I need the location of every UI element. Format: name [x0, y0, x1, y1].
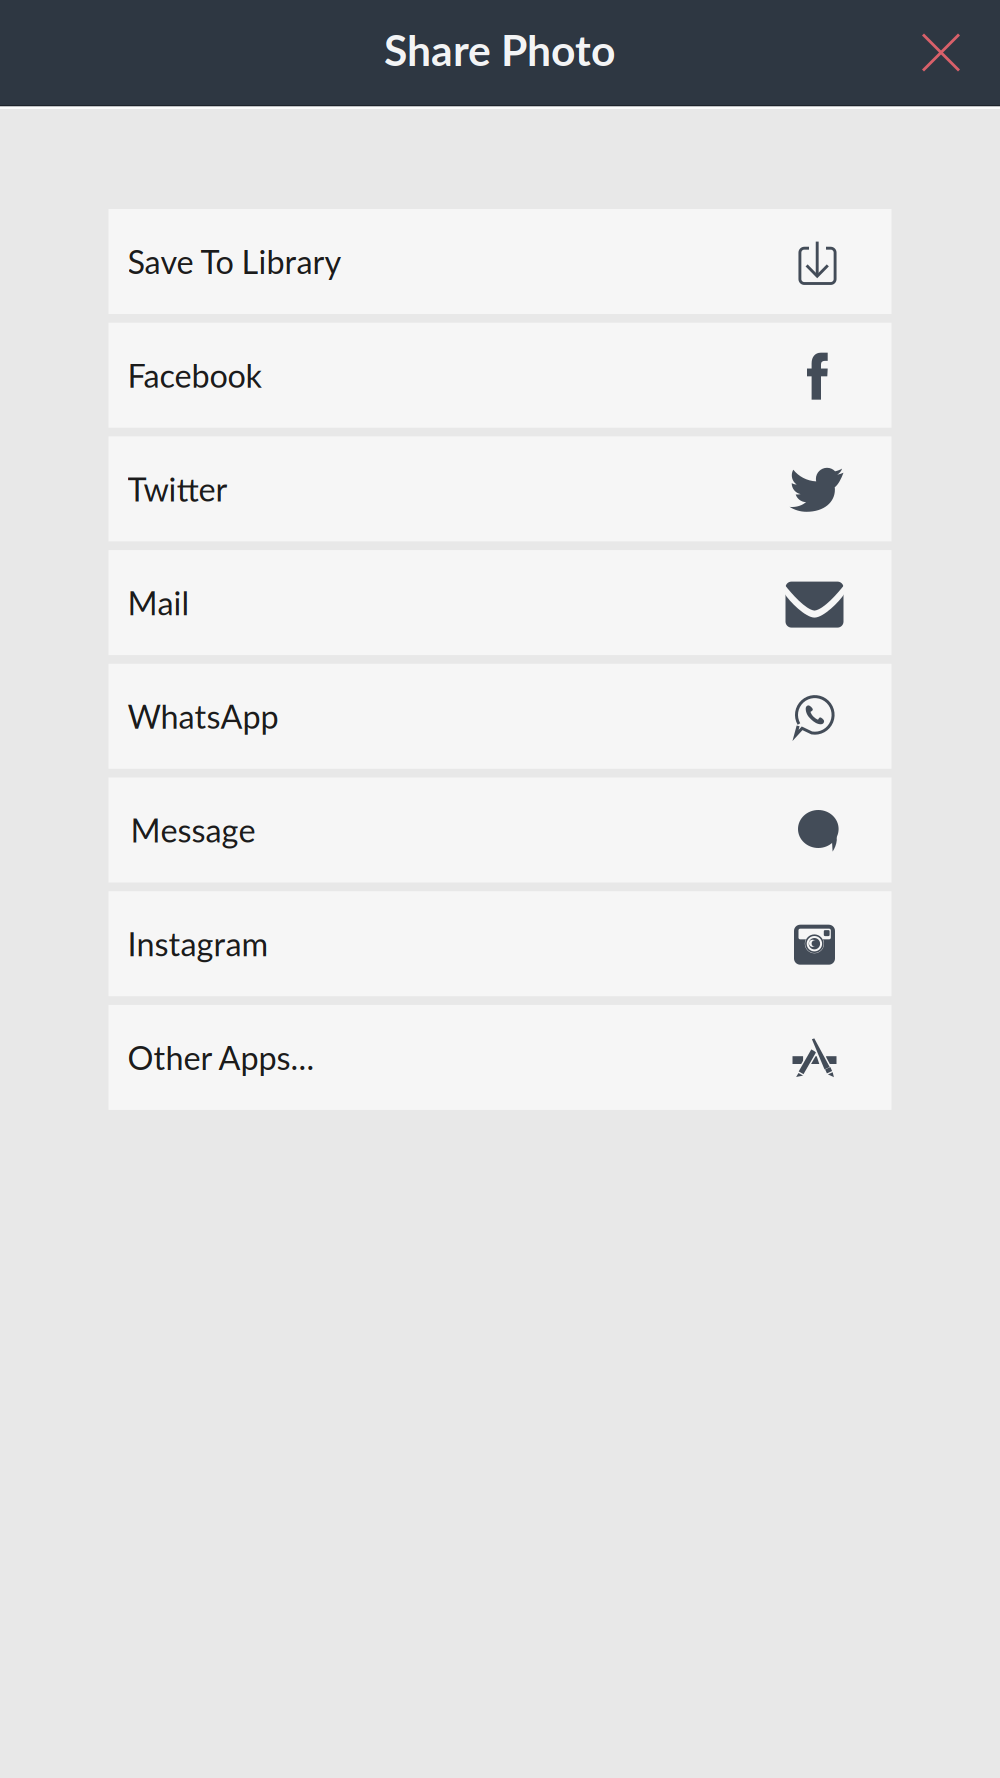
button[interactable]: Save To Library [108, 209, 891, 314]
staticText: WhatsApp [127, 697, 278, 736]
staticText: Instagram [127, 924, 268, 963]
staticText: Mail [127, 583, 189, 622]
button[interactable]: Instagram [108, 891, 891, 996]
button[interactable]: Close [903, 14, 979, 90]
button[interactable]: Mail [108, 550, 891, 655]
staticText: Share Photo [384, 24, 616, 75]
button[interactable]: Facebook [108, 323, 891, 428]
button[interactable]: Other Apps... [108, 1005, 891, 1110]
button[interactable]: Twitter [108, 436, 891, 541]
button[interactable]: WhatsApp [108, 664, 891, 769]
button[interactable]: Message [108, 777, 891, 882]
staticText: Other Apps... [127, 1038, 314, 1077]
staticText: Save To Library [127, 242, 341, 281]
staticText: Twitter [127, 469, 227, 508]
staticText: Facebook [127, 356, 261, 395]
staticText: Message [130, 811, 255, 849]
